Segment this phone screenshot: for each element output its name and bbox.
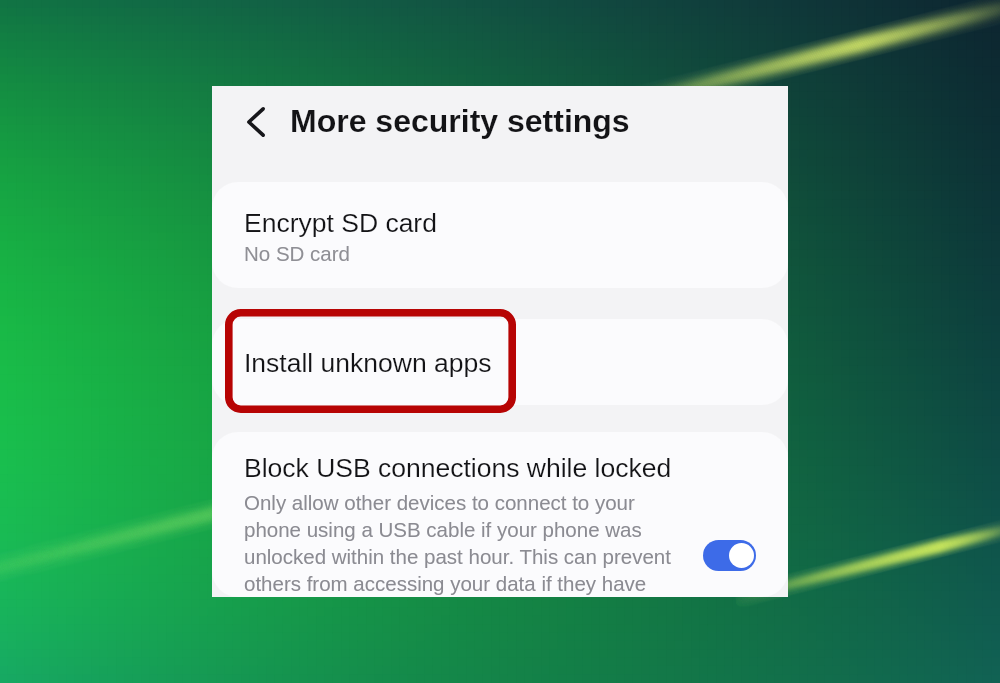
staticText: Install unknown apps: [244, 347, 492, 378]
staticText: Block USB connections while locked: [244, 452, 672, 483]
button[interactable]: Navigate up: [232, 107, 280, 137]
staticText: Encrypt SD card: [244, 207, 437, 238]
staticText: No SD card: [244, 241, 350, 266]
button[interactable]: Encrypt SD card: [212, 182, 788, 288]
staticText: More security settings: [290, 102, 630, 139]
staticText: Only allow other devices to connect to y…: [244, 488, 686, 596]
button[interactable]: Block USB connections while locked: [212, 432, 788, 597]
button[interactable]: Install unknown apps: [212, 319, 788, 405]
button[interactable]: Block USB connections while locked, on: [703, 540, 756, 571]
